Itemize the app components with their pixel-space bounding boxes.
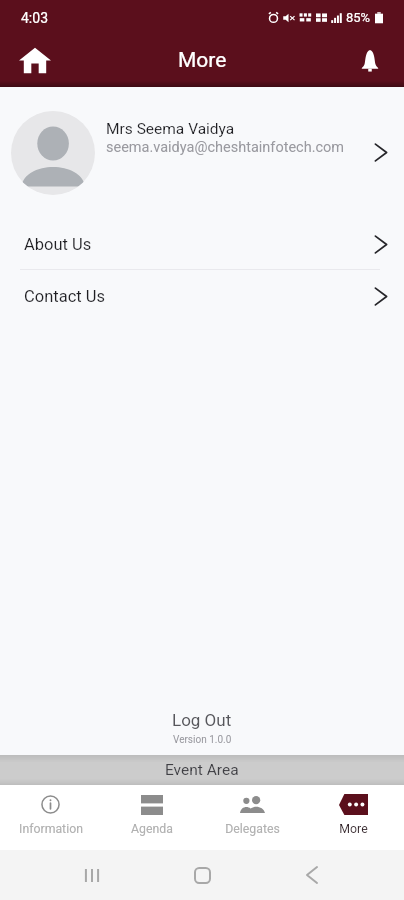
button[interactable]: Recents — [74, 857, 110, 893]
staticText: Mrs Seema Vaidya — [106, 120, 235, 138]
button[interactable]: Back — [294, 857, 330, 893]
button[interactable]: Agenda — [101, 785, 202, 850]
button[interactable]: Delegates — [202, 785, 303, 850]
button[interactable]: About Us — [0, 219, 404, 269]
staticText: Delegates — [225, 822, 280, 836]
staticText: Version 1.0.0 — [173, 734, 232, 746]
staticText: Log Out — [172, 710, 232, 730]
staticText: seema.vaidya@cheshtainfotech.com — [106, 139, 345, 156]
button[interactable]: Mrs Seema Vaidya — [0, 87, 404, 219]
staticText: 85% — [346, 10, 371, 25]
button[interactable]: Home — [184, 857, 220, 893]
button[interactable]: More — [303, 785, 404, 850]
button[interactable]: Home — [11, 37, 59, 85]
staticText: 4:03 — [21, 10, 48, 26]
button[interactable]: Log Out — [0, 710, 404, 746]
staticText: More — [339, 822, 368, 836]
staticText: Agenda — [131, 822, 173, 836]
button[interactable]: Contact Us — [0, 270, 404, 323]
button[interactable]: Notifications — [346, 37, 394, 85]
staticText: About Us — [24, 235, 374, 254]
button[interactable]: Information — [0, 785, 101, 850]
staticText: More — [178, 48, 227, 73]
staticText: Information — [19, 822, 83, 836]
staticText: Event Area — [165, 761, 239, 779]
staticText: Contact Us — [24, 287, 374, 306]
